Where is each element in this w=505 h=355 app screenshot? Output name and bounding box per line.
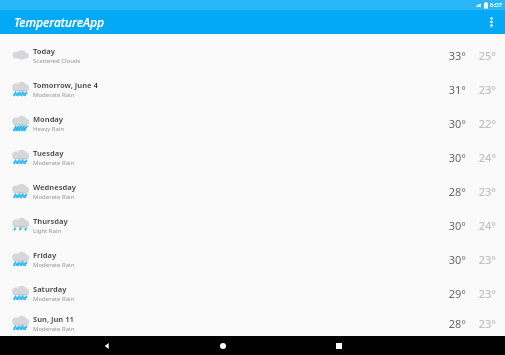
staticText: Wednesday: [33, 182, 76, 192]
staticText: 30°: [442, 218, 466, 233]
staticText: 23°: [472, 82, 496, 97]
staticText: Moderate Rain: [33, 91, 75, 99]
staticText: TemperatureApp: [14, 14, 104, 30]
staticText: 23°: [472, 316, 496, 331]
staticText: Sun, Jun 11: [33, 314, 74, 324]
staticText: Moderate Rain: [33, 295, 75, 303]
staticText: Today: [33, 46, 56, 56]
staticText: Moderate Rain: [33, 159, 75, 167]
staticText: Saturday: [33, 284, 67, 294]
staticText: 25°: [472, 48, 496, 63]
staticText: Moderate Rain: [33, 261, 75, 269]
button[interactable]: Saturday: [0, 276, 505, 310]
staticText: 22°: [472, 116, 496, 131]
staticText: Light Rain: [33, 227, 62, 235]
staticText: Moderate Rain: [33, 325, 75, 333]
staticText: Tomorrow, June 4: [33, 80, 98, 90]
staticText: 6:07: [490, 1, 502, 9]
staticText: 23°: [472, 286, 496, 301]
staticText: 28°: [442, 184, 466, 199]
staticText: 30°: [442, 150, 466, 165]
staticText: 23°: [472, 184, 496, 199]
staticText: 33°: [442, 48, 466, 63]
button[interactable]: Recent apps: [330, 337, 348, 355]
staticText: 31°: [442, 82, 466, 97]
button[interactable]: Sun, Jun 11: [0, 310, 505, 336]
staticText: Thursday: [33, 216, 68, 226]
staticText: Monday: [33, 114, 64, 124]
button[interactable]: Tuesday: [0, 140, 505, 174]
staticText: 30°: [442, 116, 466, 131]
button[interactable]: Back: [98, 337, 116, 355]
staticText: 28°: [442, 316, 466, 331]
staticText: Moderate Rain: [33, 193, 75, 201]
staticText: Tuesday: [33, 148, 64, 158]
staticText: 23°: [472, 252, 496, 267]
button[interactable]: Wednesday: [0, 174, 505, 208]
button[interactable]: More options: [480, 11, 502, 33]
button[interactable]: Monday: [0, 106, 505, 140]
staticText: 30°: [442, 252, 466, 267]
staticText: Scattered Clouds: [33, 57, 81, 65]
staticText: Heavy Rain: [33, 125, 65, 133]
staticText: 29°: [442, 286, 466, 301]
staticText: 24°: [472, 218, 496, 233]
button[interactable]: Friday: [0, 242, 505, 276]
button[interactable]: Tomorrow, June 4: [0, 72, 505, 106]
staticText: Friday: [33, 250, 57, 260]
button[interactable]: Thursday: [0, 208, 505, 242]
button[interactable]: Home: [214, 337, 232, 355]
button[interactable]: Today: [0, 38, 505, 72]
staticText: 24°: [472, 150, 496, 165]
